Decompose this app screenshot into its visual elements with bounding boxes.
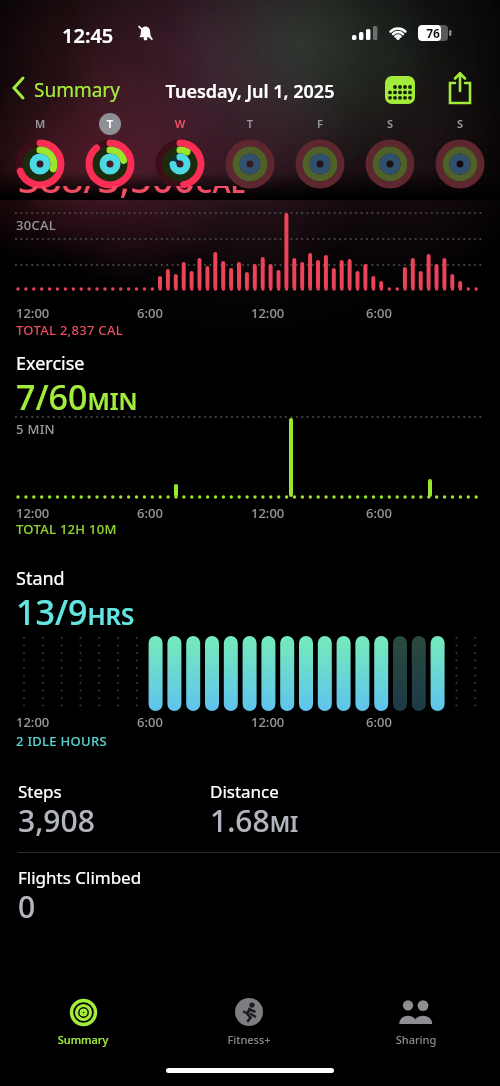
staticText: 12:00: [251, 713, 285, 731]
staticText: 7/60MIN: [16, 374, 138, 420]
staticText: 12:00: [251, 304, 285, 322]
button[interactable]: Fitness+: [199, 992, 299, 1048]
button[interactable]: Summary: [10, 74, 130, 104]
button[interactable]: Sharing: [366, 992, 466, 1048]
staticText: 6:00: [137, 713, 163, 731]
staticText: 30CAL: [16, 216, 57, 234]
staticText: M: [29, 116, 51, 131]
staticText: TOTAL 2,837 CAL: [16, 321, 123, 339]
staticText: 6:00: [366, 304, 392, 322]
button[interactable]: [384, 74, 416, 106]
staticText: F: [309, 116, 331, 131]
staticText: Distance: [210, 780, 279, 803]
staticText: T: [99, 116, 121, 131]
button[interactable]: Summary: [33, 992, 133, 1048]
staticText: Summary: [34, 77, 120, 103]
staticText: Sharing: [366, 1032, 466, 1047]
staticText: 2 IDLE HOURS: [16, 732, 107, 750]
staticText: 1.68MI: [210, 800, 299, 841]
staticText: 12:00: [16, 713, 50, 731]
staticText: 6:00: [366, 504, 392, 522]
staticText: S: [379, 116, 401, 131]
staticText: 6:00: [137, 304, 163, 322]
button[interactable]: [0, 138, 500, 192]
staticText: Exercise: [16, 351, 85, 376]
staticText: 0: [18, 886, 36, 927]
staticText: 6:00: [366, 713, 392, 731]
staticText: T: [239, 116, 261, 131]
staticText: 12:00: [251, 504, 285, 522]
staticText: Fitness+: [199, 1032, 299, 1047]
staticText: TOTAL 12H 10M: [16, 520, 117, 538]
staticText: 388/3,500CAL: [18, 186, 246, 203]
staticText: W: [169, 116, 191, 131]
staticText: 13/9HRS: [16, 589, 135, 635]
staticText: Steps: [18, 780, 62, 803]
staticText: 12:45: [62, 22, 114, 49]
staticText: 6:00: [137, 504, 163, 522]
staticText: Tuesday, Jul 1, 2025: [130, 79, 370, 104]
staticText: 5 MIN: [16, 420, 55, 438]
staticText: Stand: [16, 566, 65, 591]
button[interactable]: [446, 71, 476, 107]
staticText: 12:00: [16, 504, 50, 522]
staticText: 12:00: [16, 304, 50, 322]
staticText: Summary: [33, 1032, 133, 1047]
staticText: 76: [418, 25, 448, 41]
staticText: 3,908: [18, 800, 95, 841]
staticText: Flights Climbed: [18, 866, 142, 889]
staticText: S: [449, 116, 471, 131]
